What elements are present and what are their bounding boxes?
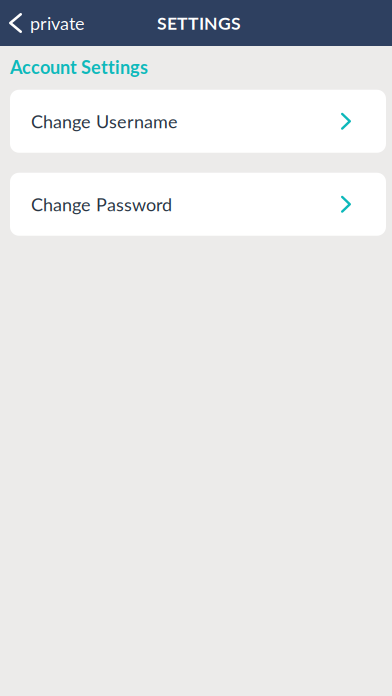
button[interactable]: private (0, 0, 97, 46)
button[interactable]: Change Password (10, 173, 386, 236)
button[interactable]: Change Username (10, 90, 386, 153)
staticText: Change Password (31, 193, 172, 215)
staticText: Change Username (31, 110, 178, 132)
staticText: private (30, 12, 85, 34)
staticText: SETTINGS (157, 12, 241, 33)
staticText: Account Settings (10, 56, 148, 78)
